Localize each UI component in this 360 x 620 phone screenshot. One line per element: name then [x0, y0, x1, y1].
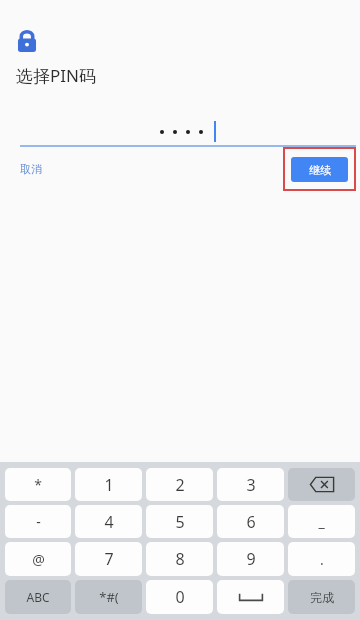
- button[interactable]: .: [288, 542, 355, 576]
- staticText: 选择PIN码: [16, 64, 96, 87]
- button[interactable]: 0: [146, 580, 213, 614]
- button[interactable]: 9: [217, 542, 284, 576]
- button[interactable]: 完成: [288, 580, 355, 614]
- staticText: 8: [175, 548, 185, 570]
- staticText: ABC: [26, 589, 50, 605]
- staticText: 5: [175, 511, 185, 533]
- staticText: 2: [175, 474, 185, 496]
- staticText: 4: [104, 511, 114, 533]
- staticText: *#(: [99, 588, 119, 606]
- staticText: _: [318, 512, 325, 531]
- button[interactable]: @: [5, 542, 71, 576]
- button[interactable]: 8: [146, 542, 213, 576]
- staticText: .: [320, 550, 324, 569]
- staticText: 7: [104, 548, 114, 570]
- button[interactable]: Backspace: [288, 468, 355, 501]
- button[interactable]: 4: [75, 505, 142, 538]
- button[interactable]: 继续: [291, 157, 348, 182]
- button[interactable]: 2: [146, 468, 213, 501]
- staticText: 6: [246, 511, 256, 533]
- staticText: 0: [175, 586, 185, 608]
- button[interactable]: 7: [75, 542, 142, 576]
- staticText: 3: [246, 474, 256, 496]
- button[interactable]: 5: [146, 505, 213, 538]
- button[interactable]: *#(: [75, 580, 142, 614]
- staticText: -: [36, 512, 41, 531]
- button[interactable]: 6: [217, 505, 284, 538]
- button[interactable]: 取消: [16, 158, 46, 180]
- staticText: *: [34, 475, 42, 494]
- button[interactable]: _: [288, 505, 355, 538]
- button[interactable]: 3: [217, 468, 284, 501]
- button[interactable]: *: [5, 468, 71, 501]
- staticText: 完成: [310, 590, 334, 605]
- staticText: 9: [246, 548, 256, 570]
- staticText: 1: [104, 474, 114, 496]
- button[interactable]: -: [5, 505, 71, 538]
- button[interactable]: ABC: [5, 580, 71, 614]
- staticText: 取消: [20, 162, 42, 176]
- staticText: @: [32, 550, 45, 569]
- button[interactable]: 1: [75, 468, 142, 501]
- staticText: 继续: [309, 163, 331, 177]
- button[interactable]: Space: [217, 580, 284, 614]
